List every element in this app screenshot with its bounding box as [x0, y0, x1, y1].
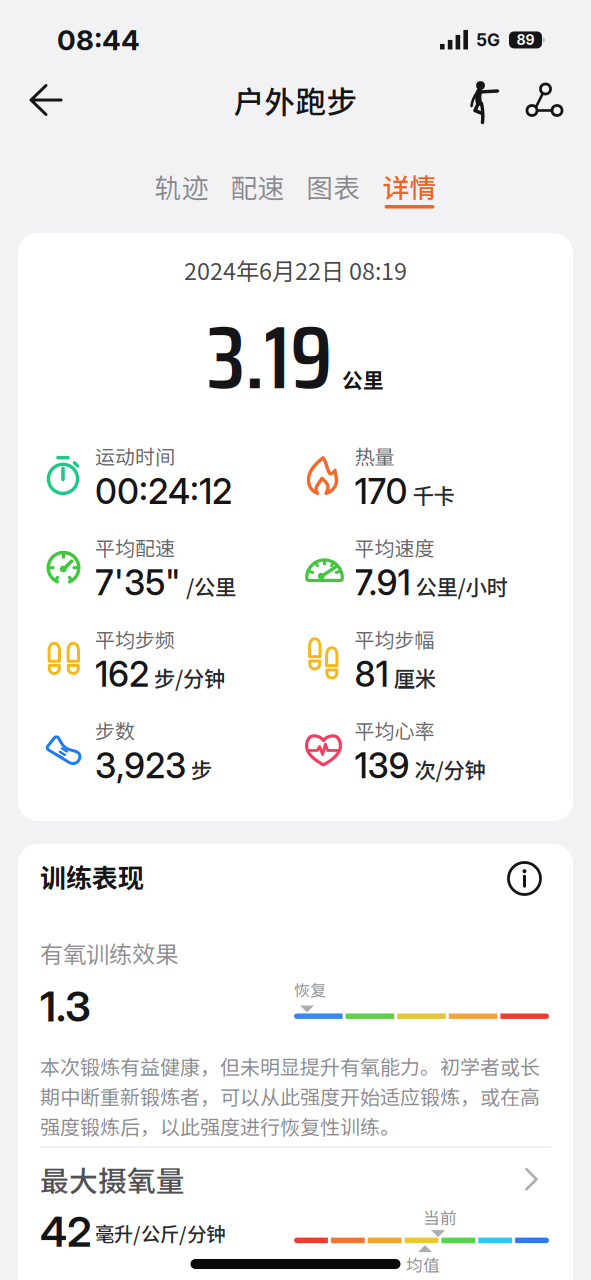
staticText: 81 — [354, 653, 388, 695]
staticText: 5G — [476, 29, 500, 50]
staticText: 当前 — [423, 1205, 457, 1229]
staticText: 平均步频 — [95, 624, 175, 653]
staticText: 89 — [516, 31, 534, 48]
staticText: 强度锻炼后，以此强度进行恢复性训练。 — [40, 1111, 400, 1140]
staticText: 本次锻炼有益健康，但未明显提升有氧能力。初学者或长 — [40, 1052, 540, 1081]
staticText: 公里/小时 — [415, 571, 507, 601]
staticText: 最大摄氧量 — [40, 1158, 185, 1200]
staticText: 公里 — [342, 364, 384, 394]
staticText: 步数 — [95, 716, 135, 745]
staticText: 有氧训练效果 — [40, 936, 178, 970]
button[interactable]: 轨迹 — [154, 146, 208, 208]
staticText: 平均速度 — [354, 533, 434, 562]
staticText: 平均配速 — [95, 533, 175, 562]
staticText: 配速 — [230, 167, 284, 206]
staticText: 00:24:12 — [95, 470, 232, 512]
staticText: 图表 — [306, 167, 360, 206]
button[interactable]: 训练动作 — [462, 76, 500, 123]
button[interactable]: 图表 — [306, 146, 360, 208]
button[interactable]: 运动轨迹 — [500, 83, 563, 116]
staticText: 均值 — [406, 1252, 440, 1276]
staticText: 热量 — [354, 441, 394, 470]
staticText: 期中断重新锻炼者，可以从此强度开始适应锻炼，或在高 — [40, 1082, 540, 1111]
button[interactable]: 返回 — [29, 84, 62, 116]
staticText: 2024年6月22日 08:19 — [184, 253, 407, 287]
button[interactable]: 训练表现说明 — [507, 857, 542, 896]
staticText: 7.91 — [354, 562, 410, 604]
staticText: 训练表现 — [40, 858, 144, 895]
staticText: 1.3 — [40, 981, 91, 1032]
staticText: 3,923 — [95, 745, 186, 786]
staticText: 平均步幅 — [354, 624, 434, 653]
staticText: 42 — [40, 1206, 92, 1257]
staticText: 次/分钟 — [414, 753, 485, 784]
staticText: 162 — [95, 653, 149, 695]
staticText: 千卡 — [412, 479, 454, 510]
staticText: 毫升/公斤/分钟 — [95, 1219, 225, 1247]
staticText: 轨迹 — [154, 167, 208, 206]
button[interactable]: 配速 — [230, 146, 284, 208]
button[interactable]: 最大摄氧量 — [18, 1147, 573, 1200]
staticText: 平均心率 — [354, 716, 434, 745]
staticText: 3.19 — [207, 287, 333, 427]
button[interactable]: 详情 — [382, 146, 436, 208]
staticText: 08:44 — [57, 23, 140, 57]
staticText: 139 — [354, 745, 409, 786]
staticText: /公里 — [186, 571, 236, 601]
staticText: 详情 — [382, 167, 436, 206]
staticText: 7'35" — [95, 562, 181, 604]
staticText: 户外跑步 — [233, 78, 357, 122]
staticText: 恢复 — [294, 978, 326, 1001]
staticText: 运动时间 — [95, 441, 175, 470]
staticText: 步/分钟 — [154, 662, 225, 693]
staticText: 170 — [354, 470, 407, 512]
staticText: 厘米 — [393, 662, 435, 693]
staticText: 步 — [191, 753, 212, 784]
